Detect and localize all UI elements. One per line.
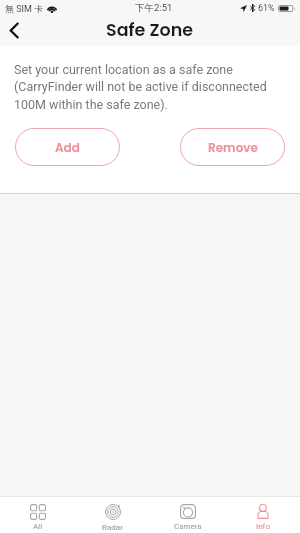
staticText: 無 SIM 卡 (5, 3, 44, 14)
staticText: Set your current location as a safe zone… (14, 62, 267, 113)
button[interactable]: Add (15, 128, 120, 166)
button[interactable]: Back (0, 14, 28, 46)
staticText: All (33, 522, 43, 531)
button[interactable]: Radar (75, 497, 150, 533)
staticText: Remove (208, 139, 258, 156)
staticText: Radar (102, 523, 123, 532)
staticText: 61% (258, 3, 275, 14)
staticText: Add (55, 139, 80, 156)
button[interactable]: Camera (150, 497, 225, 533)
staticText: 下午2:51 (135, 2, 173, 14)
button[interactable]: Info (225, 497, 300, 533)
staticText: Camera (174, 522, 202, 531)
button[interactable]: Remove (180, 128, 285, 166)
button[interactable]: All (0, 497, 75, 533)
staticText: Safe Zone (106, 18, 194, 43)
staticText: Info (256, 522, 270, 531)
